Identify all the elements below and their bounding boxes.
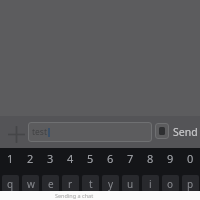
button[interactable]: w bbox=[22, 175, 39, 192]
button[interactable]: 6 bbox=[100, 151, 120, 164]
button[interactable]: q bbox=[2, 175, 19, 192]
staticText: y bbox=[108, 177, 114, 191]
staticText: 5 bbox=[87, 151, 94, 164]
button[interactable]: 0 bbox=[180, 151, 200, 164]
button[interactable]: 4 bbox=[60, 151, 80, 164]
button[interactable]: 8 bbox=[140, 151, 160, 164]
staticText: w bbox=[27, 177, 35, 191]
button[interactable]: Send bbox=[171, 119, 200, 145]
button[interactable] bbox=[155, 123, 169, 139]
staticText: q bbox=[7, 177, 14, 191]
staticText: 7 bbox=[127, 151, 134, 164]
staticText: e bbox=[48, 177, 54, 191]
staticText: o bbox=[167, 177, 174, 191]
staticText: 8 bbox=[147, 151, 154, 164]
button[interactable]: r bbox=[62, 175, 79, 192]
staticText: 9 bbox=[167, 151, 174, 164]
button[interactable]: 2 bbox=[20, 151, 40, 164]
staticText: 1 bbox=[7, 151, 14, 164]
staticText: 3 bbox=[47, 151, 54, 164]
button[interactable]: 5 bbox=[80, 151, 100, 164]
staticText: test bbox=[32, 126, 48, 138]
button[interactable]: 3 bbox=[40, 151, 60, 164]
staticText: r bbox=[68, 177, 73, 191]
button[interactable]: e bbox=[42, 175, 59, 192]
button[interactable]: test bbox=[28, 122, 152, 142]
button[interactable] bbox=[5, 123, 28, 146]
staticText: Sending a chat bbox=[55, 192, 94, 199]
button[interactable]: u bbox=[122, 175, 139, 192]
button[interactable]: y bbox=[102, 175, 119, 192]
button[interactable]: 9 bbox=[160, 151, 180, 164]
staticText: i bbox=[149, 177, 152, 191]
button[interactable]: 1 bbox=[0, 151, 20, 164]
button[interactable]: o bbox=[162, 175, 179, 192]
button[interactable]: t bbox=[82, 175, 99, 192]
staticText: p bbox=[187, 177, 194, 191]
staticText: u bbox=[127, 177, 134, 191]
button[interactable]: i bbox=[142, 175, 159, 192]
button[interactable]: p bbox=[182, 175, 199, 192]
staticText: 6 bbox=[107, 151, 114, 164]
staticText: 2 bbox=[27, 151, 34, 164]
button[interactable]: 7 bbox=[120, 151, 140, 164]
staticText: t bbox=[89, 177, 93, 191]
staticText: Send bbox=[173, 125, 198, 139]
staticText: 4 bbox=[67, 151, 74, 164]
staticText: 0 bbox=[187, 151, 194, 164]
